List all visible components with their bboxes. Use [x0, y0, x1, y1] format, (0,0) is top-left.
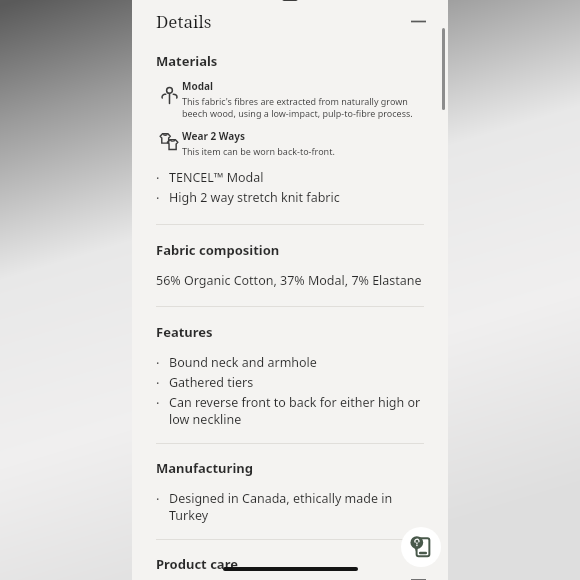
staticText: Materials: [156, 52, 218, 70]
staticText: ·: [156, 354, 160, 372]
staticText: Features: [156, 323, 213, 341]
staticText: Fabric composition: [156, 241, 280, 259]
staticText: 56% Organic Cotton, 37% Modal, 7% Elasta…: [156, 272, 422, 289]
staticText: Gathered tiers: [169, 374, 254, 391]
staticText: ·: [156, 394, 160, 412]
staticText: Bound neck and armhole: [169, 354, 317, 371]
staticText: Product care: [156, 555, 238, 573]
staticText: Can reverse front to back for either hig…: [169, 394, 424, 428]
staticText: ·: [156, 490, 160, 508]
staticText: ·: [156, 374, 160, 392]
staticText: ·: [156, 169, 160, 187]
staticText: High 2 way stretch knit fabric: [169, 189, 340, 206]
button[interactable]: Help and support: [401, 527, 441, 567]
staticText: Wear 2 Ways: [182, 129, 246, 143]
staticText: This fabric's fibres are extracted from …: [182, 95, 424, 120]
staticText: TENCEL™ Modal: [169, 169, 264, 186]
button[interactable]: Details: [132, 5, 448, 38]
staticText: Manufacturing: [156, 459, 253, 477]
staticText: Details: [156, 10, 212, 33]
staticText: Designed in Canada, ethically made in Tu…: [169, 490, 424, 524]
staticText: This item can be worn back-to-front.: [182, 145, 335, 157]
staticText: ·: [156, 189, 160, 207]
staticText: Modal: [182, 79, 213, 93]
